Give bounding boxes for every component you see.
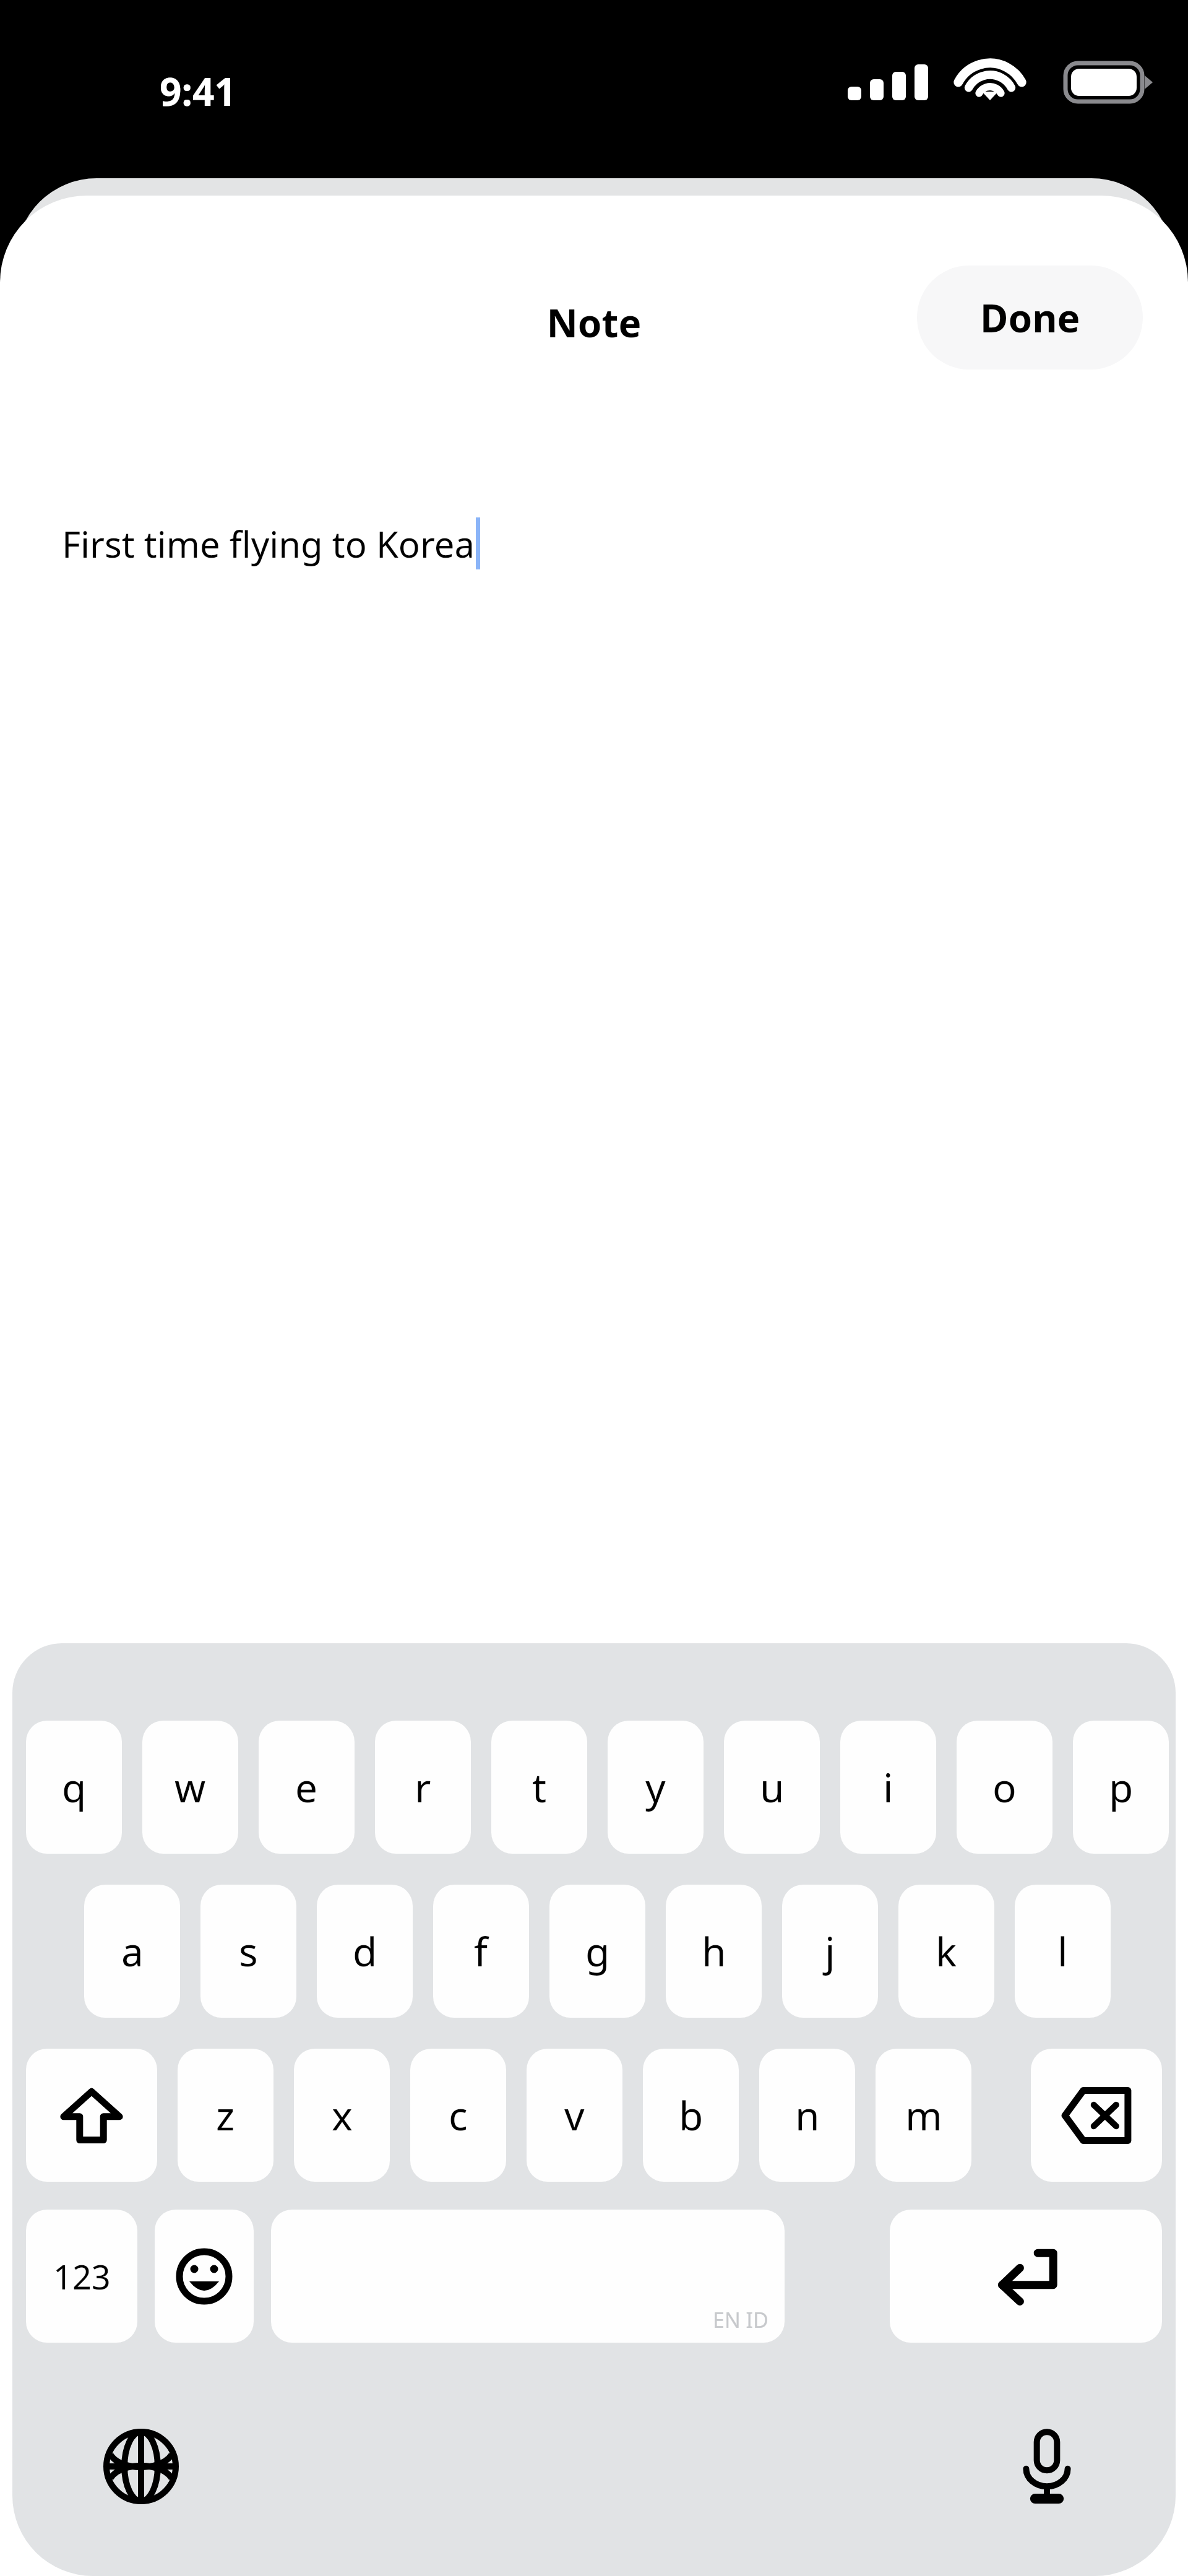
button[interactable]: p — [1073, 1721, 1169, 1854]
button[interactable]: u — [724, 1721, 820, 1854]
staticText: 123 — [53, 2254, 111, 2299]
button[interactable]: g — [549, 1885, 645, 2018]
staticText: Note — [0, 296, 1188, 348]
button[interactable]: l — [1015, 1885, 1111, 2018]
button[interactable]: h — [666, 1885, 762, 2018]
button[interactable]: Backspace — [1031, 2049, 1162, 2182]
button[interactable]: y — [608, 1721, 704, 1854]
button[interactable]: v — [527, 2049, 622, 2182]
button[interactable]: k — [898, 1885, 994, 2018]
staticText: c — [449, 2088, 468, 2142]
button[interactable]: i — [840, 1721, 936, 1854]
button[interactable]: c — [410, 2049, 506, 2182]
staticText: d — [353, 1924, 377, 1978]
staticText: First time flying to Korea — [62, 519, 475, 568]
button[interactable]: Change language — [79, 2405, 203, 2528]
staticText: q — [62, 1760, 87, 1814]
staticText: s — [239, 1924, 258, 1978]
button[interactable]: Voice input — [985, 2405, 1109, 2528]
button[interactable]: w — [142, 1721, 238, 1854]
staticText: x — [332, 2088, 353, 2142]
staticText: l — [1057, 1924, 1068, 1978]
staticText: o — [992, 1760, 1017, 1814]
button[interactable]: Done — [917, 266, 1143, 370]
button[interactable]: t — [491, 1721, 587, 1854]
staticText: j — [825, 1924, 835, 1978]
staticText: p — [1109, 1760, 1134, 1814]
staticText: v — [564, 2088, 585, 2142]
staticText: Done — [980, 292, 1080, 344]
button[interactable]: Enter — [890, 2210, 1162, 2343]
staticText: z — [216, 2088, 235, 2142]
staticText: i — [883, 1760, 893, 1814]
button[interactable]: s — [200, 1885, 296, 2018]
button[interactable]: m — [876, 2049, 971, 2182]
button[interactable]: d — [317, 1885, 413, 2018]
button[interactable]: e — [259, 1721, 355, 1854]
button[interactable]: f — [433, 1885, 529, 2018]
button[interactable]: EN ID — [271, 2210, 785, 2343]
staticText: k — [936, 1924, 957, 1978]
staticText: a — [121, 1924, 144, 1978]
staticText: 9:41 — [160, 65, 236, 117]
button[interactable]: r — [375, 1721, 471, 1854]
button[interactable]: j — [782, 1885, 878, 2018]
button[interactable]: q — [26, 1721, 122, 1854]
button[interactable]: x — [294, 2049, 390, 2182]
staticText: y — [645, 1760, 666, 1814]
staticText: h — [702, 1924, 726, 1978]
staticText: m — [905, 2088, 942, 2142]
button[interactable]: o — [957, 1721, 1052, 1854]
staticText: b — [679, 2088, 704, 2142]
staticText: u — [760, 1760, 785, 1814]
button[interactable]: b — [643, 2049, 739, 2182]
button[interactable]: z — [178, 2049, 273, 2182]
staticText: t — [532, 1760, 547, 1814]
staticText: r — [415, 1760, 431, 1814]
staticText: e — [295, 1760, 318, 1814]
button[interactable]: First time flying to Korea — [62, 517, 479, 569]
button[interactable]: 123 — [26, 2210, 137, 2343]
staticText: g — [585, 1924, 610, 1978]
button[interactable]: n — [759, 2049, 855, 2182]
button[interactable]: Emoji — [155, 2210, 254, 2343]
button[interactable]: a — [84, 1885, 180, 2018]
staticText: n — [795, 2088, 820, 2142]
staticText: w — [174, 1760, 206, 1814]
staticText: EN ID — [713, 2306, 768, 2334]
button[interactable]: Shift — [26, 2049, 157, 2182]
staticText: f — [474, 1924, 488, 1978]
